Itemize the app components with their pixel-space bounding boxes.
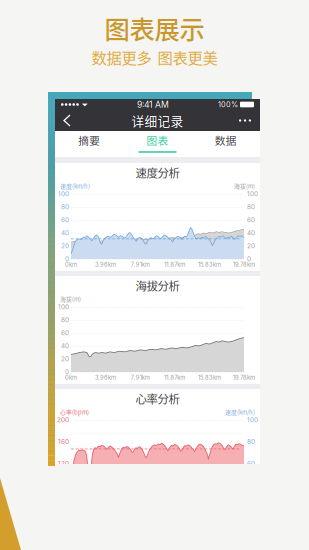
staticText: 速度(km/h)	[60, 182, 90, 190]
staticText: 0km	[65, 374, 77, 381]
staticText: 11.87km	[164, 261, 185, 268]
staticText: 3.96km	[95, 374, 116, 381]
staticText: 100	[58, 303, 69, 311]
staticText: 心率(bpm)	[60, 408, 89, 416]
staticText: 数据	[215, 132, 237, 148]
staticText: 60	[61, 329, 69, 337]
staticText: 7.91km	[131, 261, 150, 268]
button[interactable]: 摘要	[55, 131, 123, 157]
staticText: 20	[61, 355, 69, 363]
staticText: 80	[61, 316, 69, 324]
staticText: 速度(km/h)	[225, 408, 255, 416]
staticText: 海拔分析	[135, 277, 179, 294]
staticText: 7.91km	[131, 374, 150, 381]
staticText: 0	[247, 255, 251, 263]
staticText: 160	[58, 438, 69, 445]
button[interactable]: 数据	[192, 131, 260, 157]
staticText: 100%	[218, 100, 238, 109]
staticText: 200	[57, 416, 69, 424]
staticText: 120	[58, 459, 69, 467]
staticText: 80	[247, 438, 255, 445]
staticText: 40	[61, 229, 69, 237]
staticText: 40	[247, 229, 255, 237]
staticText: 60	[61, 216, 69, 224]
staticText: 100	[58, 190, 69, 198]
staticText: 60	[247, 459, 255, 467]
staticText: 摘要	[78, 132, 100, 148]
staticText: 60	[247, 216, 255, 224]
staticText: 20	[247, 242, 255, 250]
staticText: 15.83km	[198, 374, 221, 381]
staticText: 80	[61, 203, 69, 211]
staticText: 0	[65, 255, 69, 263]
staticText: 100	[247, 416, 258, 424]
staticText: 9:41 AM	[137, 99, 169, 110]
button[interactable]: 图表	[123, 131, 192, 157]
staticText: 速度分析	[135, 164, 179, 181]
staticText: 数据更多 图表更美	[91, 46, 217, 68]
button[interactable]: 返回	[59, 111, 75, 130]
staticText: 40	[61, 342, 69, 350]
button[interactable]: 更多	[234, 111, 256, 129]
staticText: 3.96km	[95, 261, 116, 268]
staticText: 详细记录	[131, 111, 183, 130]
staticText: 海拔(m)	[60, 295, 81, 303]
staticText: 心率分析	[135, 390, 179, 407]
staticText: 0	[65, 368, 69, 376]
staticText: 11.87km	[164, 374, 185, 381]
staticText: 0km	[65, 261, 77, 268]
staticText: 80	[247, 203, 255, 211]
staticText: 海拔(m)	[234, 182, 255, 190]
staticText: 15.83km	[198, 261, 221, 268]
staticText: 图表	[146, 132, 168, 148]
staticText: 19.78km	[233, 261, 255, 268]
staticText: 20	[61, 242, 69, 250]
staticText: 19.78km	[233, 374, 255, 381]
staticText: 100	[247, 190, 258, 198]
staticText: 图表展示	[104, 10, 204, 46]
